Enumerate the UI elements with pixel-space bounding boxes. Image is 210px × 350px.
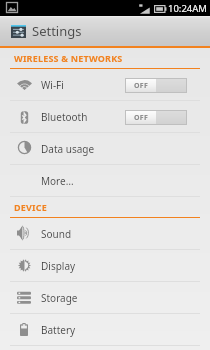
staticText: Wi-Fi bbox=[41, 78, 64, 92]
staticText: Battery bbox=[41, 323, 76, 337]
staticText: OFF bbox=[134, 81, 149, 91]
button[interactable]: Storage bbox=[0, 282, 210, 314]
button[interactable]: More… bbox=[0, 165, 210, 197]
staticText: WIRELESS & NETWORKS bbox=[14, 52, 123, 64]
button[interactable]: Sound bbox=[0, 218, 210, 250]
button[interactable]: Display bbox=[0, 250, 210, 282]
button[interactable]: Bluetooth bbox=[0, 101, 210, 133]
staticText: More… bbox=[41, 174, 74, 188]
button[interactable]: Settings bbox=[0, 16, 210, 46]
staticText: Sound bbox=[41, 227, 72, 241]
button[interactable]: OFF bbox=[126, 111, 186, 124]
staticText: OFF bbox=[134, 113, 149, 123]
button[interactable]: OFF bbox=[126, 79, 186, 92]
staticText: DEVICE bbox=[14, 201, 47, 213]
staticText: Storage bbox=[41, 291, 78, 305]
staticText: Settings bbox=[32, 22, 82, 40]
staticText: Bluetooth bbox=[41, 110, 88, 124]
button[interactable]: Wi-Fi bbox=[0, 69, 210, 101]
staticText: Data usage bbox=[41, 142, 95, 156]
staticText: Display bbox=[41, 259, 76, 273]
staticText: 10:24AM bbox=[168, 2, 207, 15]
other: Gallery notification bbox=[6, 2, 18, 13]
button[interactable]: Battery bbox=[0, 314, 210, 346]
button[interactable]: Data usage bbox=[0, 133, 210, 165]
